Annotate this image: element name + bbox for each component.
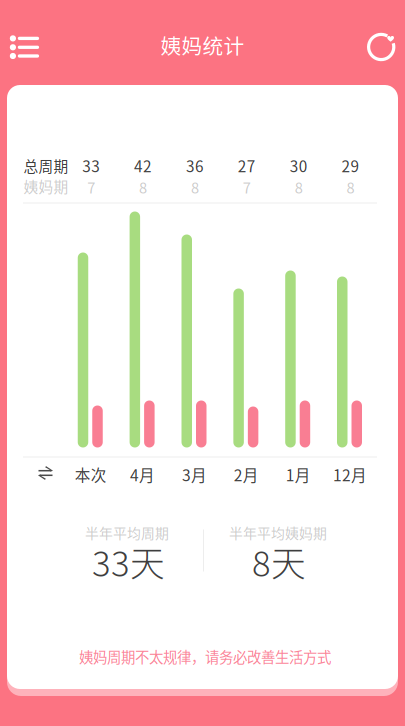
- button[interactable]: 切换统计: [27, 457, 63, 489]
- staticText: 3月: [182, 463, 207, 486]
- staticText: 8: [139, 176, 147, 198]
- staticText: 1月: [286, 463, 311, 486]
- staticText: 总周期: [23, 155, 68, 176]
- staticText: 29: [341, 154, 359, 177]
- staticText: 4月: [130, 463, 155, 486]
- staticText: 33: [82, 154, 100, 177]
- staticText: 36: [186, 154, 204, 177]
- button[interactable]: 菜单: [1, 25, 47, 69]
- staticText: 半年平均周期: [85, 522, 169, 543]
- staticText: 8: [191, 176, 199, 198]
- staticText: 33天: [92, 536, 165, 587]
- staticText: 8: [295, 176, 303, 198]
- staticText: 姨妈期: [23, 175, 68, 197]
- button[interactable]: 周期记录: [359, 25, 403, 69]
- staticText: 12月: [333, 463, 367, 486]
- staticText: 42: [134, 154, 152, 177]
- staticText: 7: [87, 176, 95, 198]
- staticText: 7: [243, 176, 251, 198]
- staticText: 半年平均姨妈期: [229, 522, 327, 543]
- staticText: 姨妈统计: [160, 30, 244, 60]
- staticText: 本次: [75, 463, 107, 486]
- staticText: 2月: [234, 463, 259, 486]
- staticText: 姨妈周期不太规律，请务必改善生活方式: [79, 646, 331, 667]
- staticText: 8天: [252, 536, 306, 587]
- staticText: 30: [290, 154, 308, 177]
- staticText: 27: [238, 154, 256, 177]
- staticText: 8: [346, 176, 354, 198]
